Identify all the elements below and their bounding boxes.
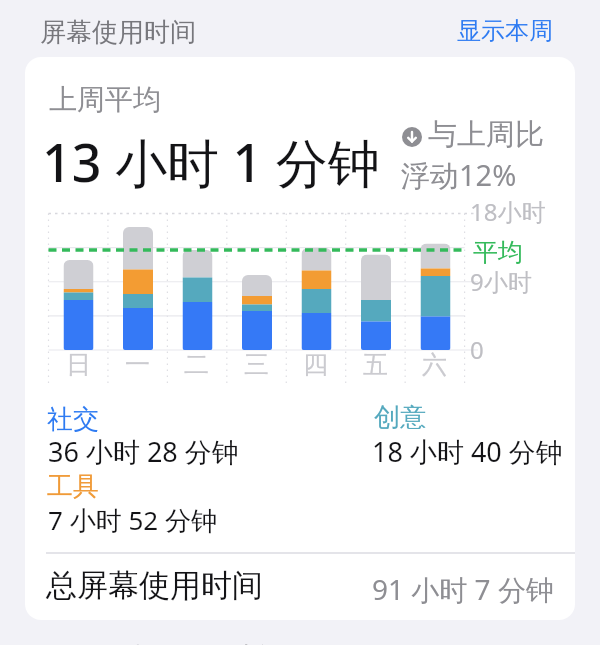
staticText: 显示本周 [457, 16, 553, 46]
staticText: 9小时 [470, 265, 532, 298]
button[interactable]: 总屏幕使用时间 [46, 566, 263, 605]
staticText: 18 小时 40 分钟 [372, 433, 563, 470]
staticText: 总屏幕使用时间 [46, 566, 263, 605]
staticText: 36 小时 28 分钟 [48, 433, 239, 470]
staticText: 0 [470, 333, 484, 366]
staticText: 浮动12% [401, 155, 517, 195]
staticText: 7 小时 52 分钟 [48, 502, 217, 538]
staticText: 三 [244, 349, 269, 380]
staticText: 91 小时 7 分钟 [372, 570, 554, 608]
staticText: 四 [303, 349, 328, 380]
staticText: 13 小时 1 分钟 [42, 126, 380, 197]
staticText: 创意 [374, 401, 426, 434]
staticText: 平均 [473, 237, 523, 268]
staticText: 社交 [47, 403, 99, 436]
staticText: 日 [66, 349, 91, 380]
staticText: 18小时 [470, 195, 546, 228]
button[interactable]: 显示本周 [457, 16, 553, 46]
staticText: 五 [363, 349, 388, 380]
staticText: 一 [125, 349, 150, 380]
staticText: 屏幕使用时间 [40, 16, 196, 49]
staticText: 上周平均 [49, 82, 161, 117]
staticText: 二 [184, 349, 209, 380]
staticText: 与上周比 [428, 116, 544, 153]
staticText: 六 [422, 349, 447, 380]
staticText: 工具 [47, 470, 99, 503]
